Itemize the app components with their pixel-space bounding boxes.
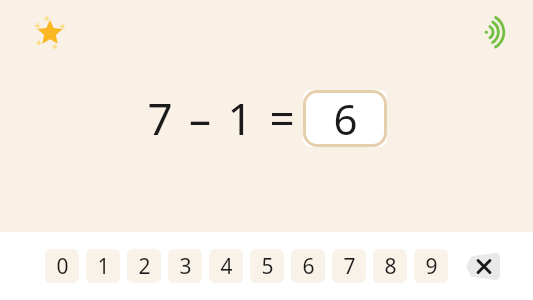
staticText: 6 — [302, 252, 315, 281]
button[interactable]: Stars earned — [32, 15, 68, 51]
button[interactable]: 5 — [250, 249, 284, 283]
staticText: 1 — [227, 88, 253, 148]
button[interactable]: 8 — [373, 249, 407, 283]
button[interactable]: 0 — [45, 249, 79, 283]
staticText: 4 — [220, 252, 233, 281]
button[interactable]: 4 — [209, 249, 243, 283]
staticText: 3 — [179, 252, 192, 281]
button[interactable]: 9 — [414, 249, 448, 283]
button[interactable]: 1 — [86, 249, 120, 283]
staticText: 1 — [97, 252, 110, 281]
button[interactable]: 6 — [303, 90, 387, 147]
staticText: 0 — [56, 252, 69, 281]
button[interactable]: 7 — [332, 249, 366, 283]
button[interactable]: 6 — [291, 249, 325, 283]
staticText: 6 — [333, 90, 358, 147]
staticText: 8 — [384, 252, 397, 281]
staticText: 7 — [343, 252, 356, 281]
button[interactable]: 2 — [127, 249, 161, 283]
staticText: 7 — [147, 88, 173, 148]
button[interactable]: Backspace — [460, 253, 500, 280]
staticText: 5 — [261, 252, 274, 281]
staticText: 9 — [425, 252, 438, 281]
staticText: – — [189, 88, 211, 148]
button[interactable]: 3 — [168, 249, 202, 283]
staticText: 2 — [138, 252, 151, 281]
button[interactable]: Play sound — [481, 16, 511, 46]
staticText: = — [269, 88, 295, 148]
